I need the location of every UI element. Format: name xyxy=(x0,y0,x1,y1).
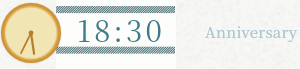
button[interactable]: 18:30 xyxy=(56,0,175,69)
button[interactable]: Anniversary xyxy=(186,14,300,54)
staticText: 18:30 xyxy=(77,8,165,50)
staticText: Anniversary xyxy=(205,21,298,43)
button[interactable]: Analogue clock showing 18:30 xyxy=(1,3,61,63)
